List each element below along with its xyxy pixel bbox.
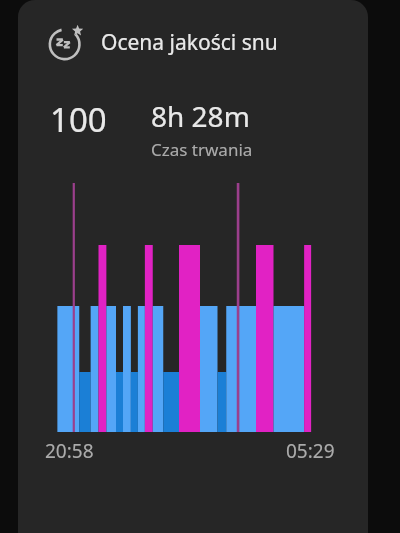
staticText: 100	[50, 97, 107, 142]
staticText: 8h 28m	[151, 97, 250, 135]
staticText: 20:58	[45, 438, 94, 464]
staticText: Ocena jakości snu	[101, 28, 278, 57]
other: Sleep quality	[48, 24, 85, 61]
button[interactable]: Sleep quality	[18, 0, 368, 533]
staticText: 05:29	[286, 438, 335, 464]
staticText: Czas trwania	[151, 138, 253, 161]
